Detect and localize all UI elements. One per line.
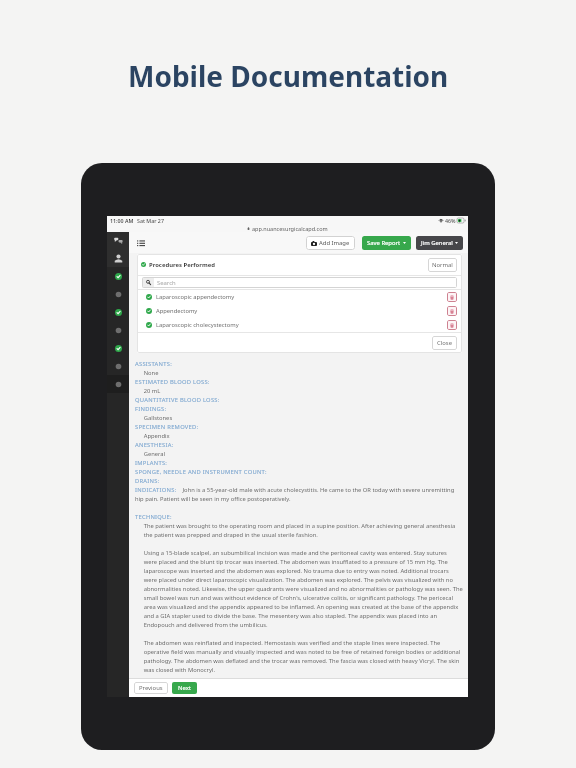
button[interactable]: Comments (107, 232, 129, 249)
staticText: Previous (139, 684, 163, 692)
button[interactable]: Delete Appendectomy (447, 306, 457, 316)
staticText: ASSISTANTS: None ESTIMATED BLOOD LOSS: 2… (135, 360, 463, 678)
button[interactable]: Laparoscopic cholecystectomy (137, 318, 462, 332)
staticText: Mobile Documentation (128, 57, 449, 95)
button[interactable]: Pending step (107, 321, 129, 339)
staticText: Laparoscopic cholecystectomy (156, 321, 239, 329)
button[interactable]: Delete Laparoscopic cholecystectomy (447, 320, 457, 330)
button[interactable]: Current step (107, 375, 129, 393)
button[interactable]: Patient profile (107, 249, 129, 267)
staticText: app.nuancesurgicalcapd.com (252, 225, 328, 232)
button[interactable]: Add Image (306, 236, 355, 250)
staticText: Normal (432, 261, 453, 269)
staticText: Appendectomy (156, 307, 198, 315)
staticText: Search (157, 279, 176, 287)
staticText: Laparoscopic appendectomy (156, 293, 235, 301)
button[interactable]: Delete Laparoscopic appendectomy (447, 292, 457, 302)
button[interactable]: Next (172, 682, 197, 694)
staticText: 11:00 AM (110, 217, 134, 224)
button[interactable]: Completed step (107, 303, 129, 321)
staticText: Save Report (367, 239, 401, 247)
button[interactable]: Previous (134, 682, 168, 694)
staticText: 46% (445, 217, 456, 224)
button[interactable]: Laparoscopic appendectomy (137, 290, 462, 304)
button[interactable]: Menu (135, 237, 147, 249)
button[interactable]: Normal (428, 258, 457, 272)
button[interactable]: Appendectomy (137, 304, 462, 318)
button[interactable]: Pending step (107, 357, 129, 375)
staticText: Sat Mar 27 (137, 217, 164, 224)
button[interactable]: Completed step (107, 267, 129, 285)
staticText: Add Image (319, 239, 350, 247)
staticText: Close (437, 339, 452, 347)
staticText: Jim General (421, 239, 453, 247)
button[interactable]: Save Report (362, 236, 411, 250)
staticText: Next (178, 684, 191, 692)
button[interactable]: Pending step (107, 285, 129, 303)
button[interactable]: Jim General (416, 236, 463, 250)
staticText: Procedures Performed (149, 261, 215, 269)
button[interactable]: Completed step (107, 339, 129, 357)
button[interactable]: Close (432, 336, 457, 350)
